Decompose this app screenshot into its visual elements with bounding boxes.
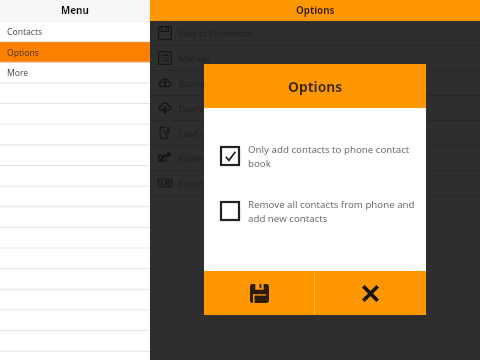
- staticText: Export as vCard: [179, 178, 240, 189]
- button[interactable]: [0, 186, 150, 207]
- button[interactable]: [0, 124, 150, 145]
- button[interactable]: [0, 289, 150, 310]
- button[interactable]: [0, 207, 150, 228]
- staticText: Options: [296, 4, 335, 17]
- staticText: Options: [288, 77, 343, 96]
- button[interactable]: [0, 248, 150, 269]
- button[interactable]: [0, 227, 150, 248]
- button[interactable]: Export as vCard: [150, 171, 480, 195]
- button[interactable]: [0, 104, 150, 125]
- button[interactable]: Contacts: [0, 21, 150, 42]
- staticText: Backup Contacts: [179, 78, 243, 89]
- button[interactable]: Cancel: [315, 271, 426, 315]
- staticText: Manage: [179, 53, 211, 64]
- staticText: More: [7, 67, 29, 79]
- staticText: Download Contacts: [179, 103, 254, 114]
- button[interactable]: [0, 331, 150, 352]
- staticText: Options: [7, 47, 39, 59]
- staticText: Export contacts: [179, 153, 239, 164]
- button[interactable]: [0, 269, 150, 290]
- staticText: Save to Phonebook: [179, 28, 253, 39]
- button[interactable]: Manage: [150, 46, 480, 70]
- button[interactable]: Download Contacts: [150, 96, 480, 120]
- button[interactable]: [0, 165, 150, 186]
- button[interactable]: [0, 310, 150, 331]
- button[interactable]: Backup Contacts: [150, 71, 480, 95]
- button[interactable]: [0, 83, 150, 104]
- staticText: Load from file: [179, 128, 233, 139]
- button[interactable]: [0, 351, 150, 360]
- button[interactable]: Load from file: [150, 121, 480, 145]
- staticText: Only add contacts to phone contact book: [248, 143, 416, 170]
- button[interactable]: Only add contacts to phone contact book: [221, 147, 416, 174]
- staticText: Menu: [61, 4, 89, 17]
- button[interactable]: Remove all contacts from phone and add n…: [221, 202, 416, 229]
- button[interactable]: [0, 145, 150, 166]
- staticText: Contacts: [7, 26, 43, 38]
- button[interactable]: Export contacts: [150, 146, 480, 170]
- staticText: Remove all contacts from phone and add n…: [248, 198, 416, 225]
- button[interactable]: Save: [204, 271, 314, 315]
- button[interactable]: Options: [0, 42, 150, 63]
- button[interactable]: More: [0, 62, 150, 83]
